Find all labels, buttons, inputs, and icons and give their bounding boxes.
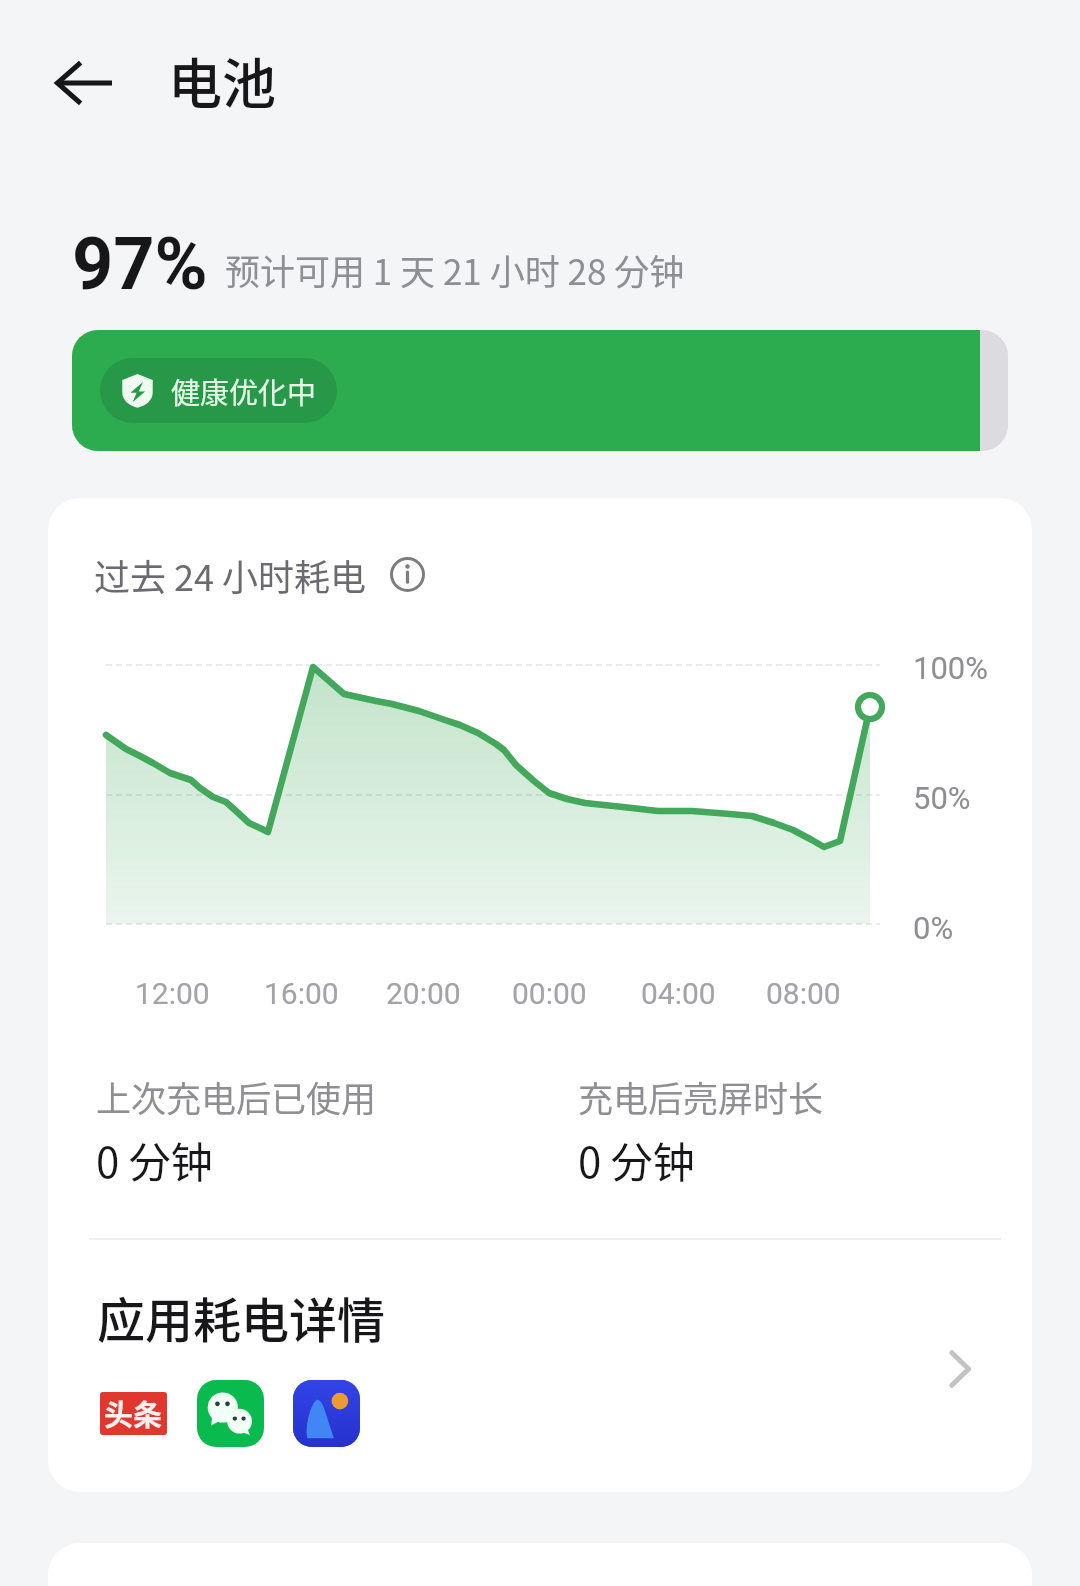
staticText: 0 分钟 xyxy=(578,1129,695,1190)
staticText: 0% xyxy=(913,910,954,946)
staticText: 健康优化中 xyxy=(171,370,317,412)
button[interactable]: Battery level 97 percent xyxy=(72,330,1008,451)
staticText: 头条 xyxy=(104,1392,163,1434)
staticText: 97% xyxy=(72,222,208,306)
staticText: 预计可用 1 天 21 小时 28 分钟 xyxy=(225,244,685,295)
staticText: 12:00 xyxy=(135,976,210,1011)
staticText: 充电后亮屏时长 xyxy=(578,1071,824,1122)
staticText: 过去 24 小时耗电 xyxy=(94,549,367,601)
staticText: 上次充电后已使用 xyxy=(96,1071,377,1122)
staticText: 0 分钟 xyxy=(96,1129,213,1190)
staticText: 04:00 xyxy=(641,976,716,1011)
staticText: 16:00 xyxy=(264,976,339,1011)
staticText: 100% xyxy=(913,650,988,686)
button[interactable]: More information xyxy=(386,553,428,595)
staticText: 电池 xyxy=(168,41,276,119)
staticText: 50% xyxy=(913,780,971,816)
staticText: 20:00 xyxy=(386,976,461,1011)
staticText: 08:00 xyxy=(766,976,841,1011)
button[interactable]: 应用耗电详情 xyxy=(48,1250,1032,1490)
button[interactable]: Back xyxy=(39,38,129,128)
staticText: 应用耗电详情 xyxy=(97,1282,386,1352)
staticText: 00:00 xyxy=(512,976,587,1011)
